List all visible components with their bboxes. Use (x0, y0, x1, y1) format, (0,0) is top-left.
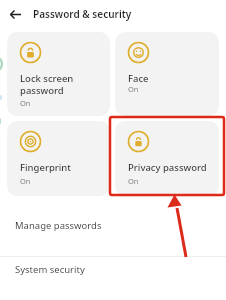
button[interactable]: Privacy password (115, 121, 219, 196)
button[interactable] (6, 5, 24, 23)
staticText: Manage passwords (15, 219, 102, 232)
staticText: On (128, 176, 139, 186)
button[interactable]: Fingerprint (7, 121, 110, 196)
button[interactable]: Face (115, 32, 219, 116)
button[interactable]: System security (0, 258, 226, 280)
staticText: Privacy password (128, 161, 207, 174)
staticText: On (20, 98, 31, 108)
button[interactable]: Lock screen password (7, 32, 110, 116)
staticText: Password & security (33, 7, 132, 21)
staticText: On (128, 84, 139, 94)
button[interactable]: Manage passwords (0, 210, 226, 240)
staticText: On (20, 176, 31, 186)
staticText: System security (15, 263, 85, 276)
staticText: Fingerprint (20, 161, 71, 174)
staticText: Face (128, 72, 149, 85)
staticText: Lock screen password (20, 72, 74, 97)
